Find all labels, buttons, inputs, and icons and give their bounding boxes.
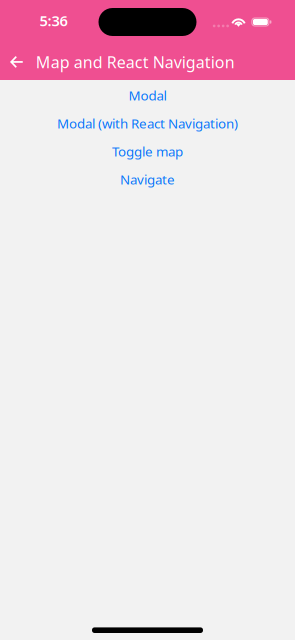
button[interactable]: Toggle map <box>0 137 295 165</box>
staticText: Toggle map <box>112 142 183 160</box>
button[interactable]: Modal <box>0 81 295 109</box>
button[interactable]: Navigate <box>0 165 295 193</box>
staticText: Modal (with React Navigation) <box>57 114 238 132</box>
button[interactable]: Back <box>0 44 34 80</box>
staticText: Modal <box>128 86 166 104</box>
button[interactable]: Modal (with React Navigation) <box>0 109 295 137</box>
staticText: 5:36 <box>39 11 67 30</box>
staticText: Map and React Navigation <box>36 51 235 73</box>
staticText: Navigate <box>120 170 175 188</box>
